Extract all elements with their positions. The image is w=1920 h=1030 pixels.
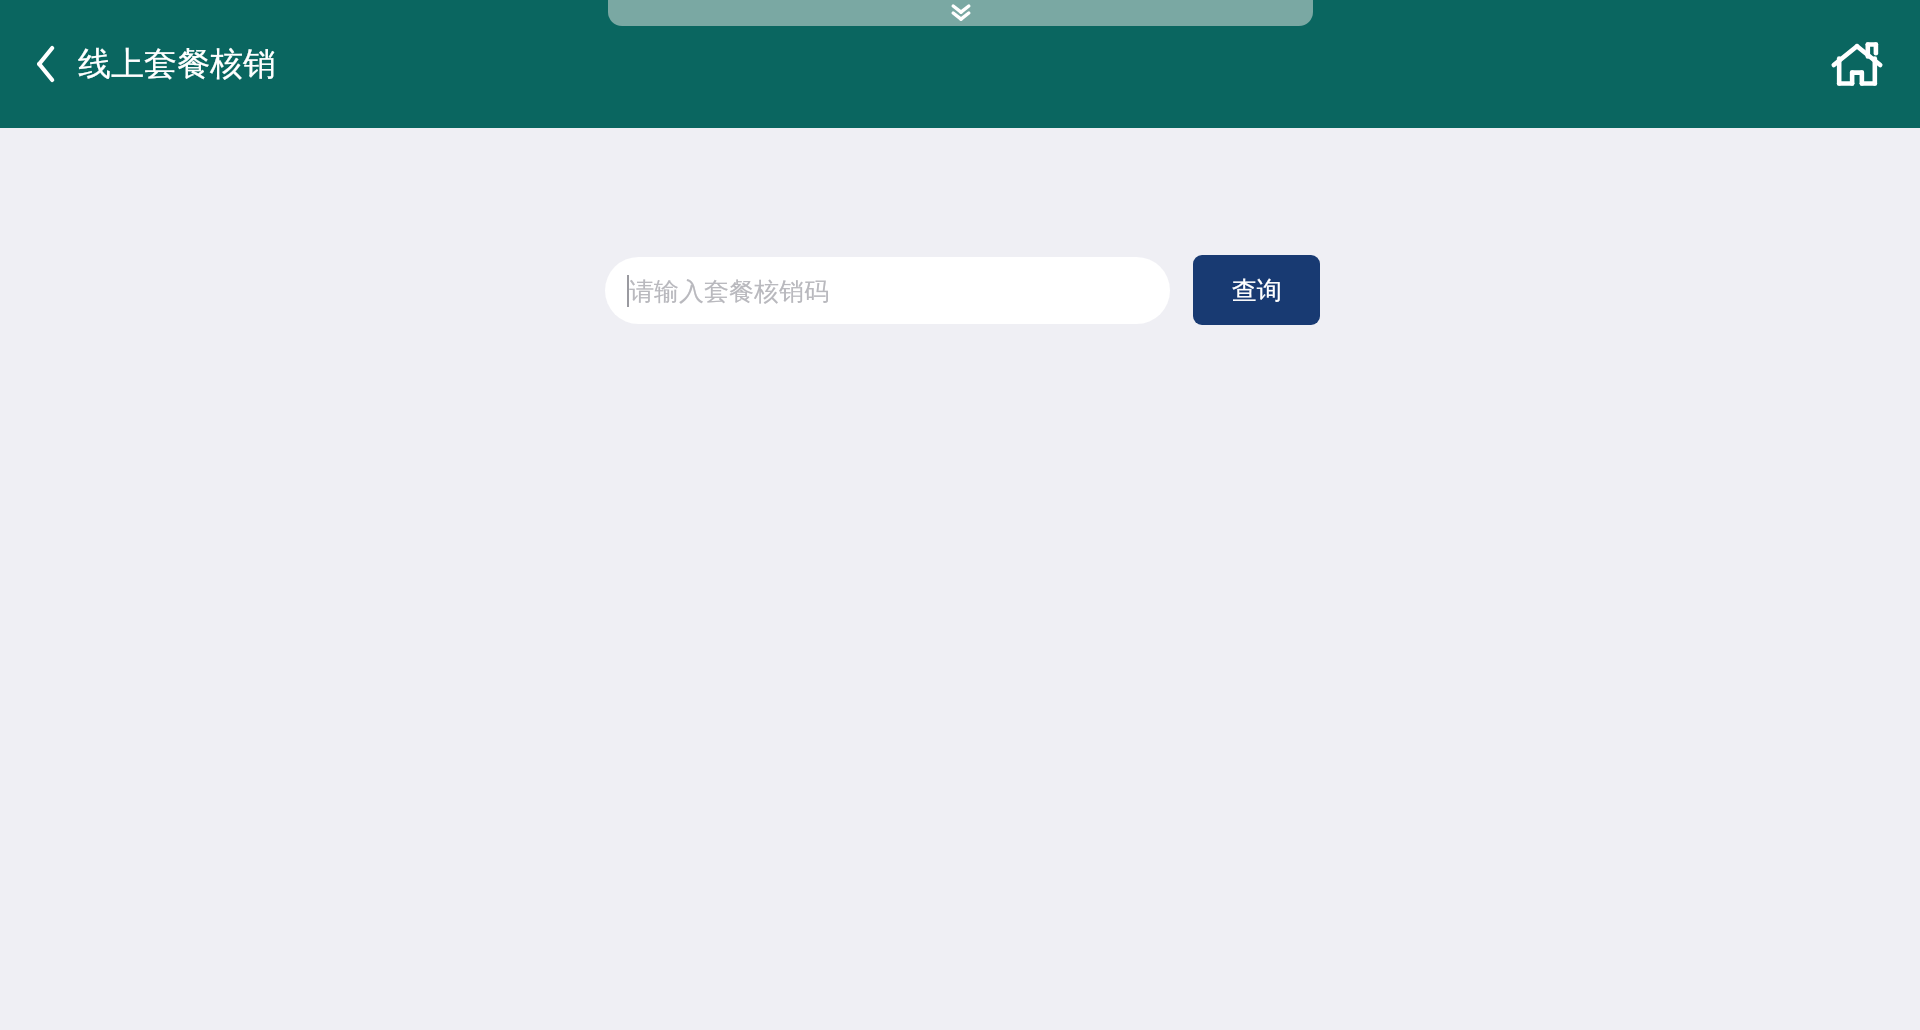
- button[interactable]: 线上套餐核销: [26, 33, 284, 95]
- staticText: 线上套餐核销: [78, 43, 276, 85]
- button[interactable]: Home: [1820, 27, 1894, 101]
- staticText: 查询: [1232, 275, 1282, 306]
- button[interactable]: Expand panel: [608, 0, 1313, 26]
- button[interactable]: 请输入套餐核销码: [605, 257, 1170, 324]
- staticText: 请输入套餐核销码: [629, 276, 829, 307]
- button[interactable]: 查询: [1193, 255, 1320, 325]
